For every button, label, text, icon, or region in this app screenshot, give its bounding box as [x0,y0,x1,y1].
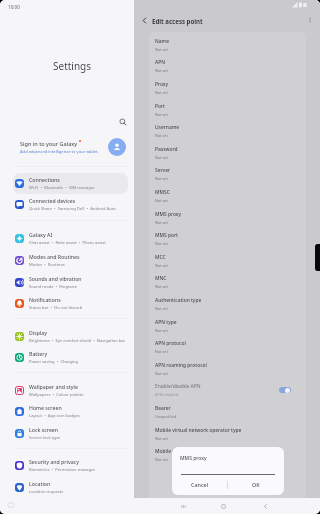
button[interactable]: Battery [13,347,128,368]
staticText: Not set [155,90,168,95]
staticText: Status bar • Do not disturb [29,305,83,311]
button[interactable]: More options [303,13,317,27]
button[interactable]: Enable/disable APN [149,379,306,401]
staticText: APN [155,59,165,66]
staticText: Unspecified [155,414,176,419]
button[interactable]: Search [116,115,130,129]
staticText: Not set [155,349,168,354]
staticText: Cancel [191,481,209,488]
button[interactable]: Username [149,120,306,142]
button[interactable]: Wallpaper and style [13,380,128,401]
staticText: Mobile virtual network operator type [155,427,242,434]
button[interactable]: Authentication type [149,293,306,315]
button[interactable]: Server [149,163,306,185]
staticText: Modes and Routines [29,253,80,260]
button[interactable]: MMS proxy [172,447,284,495]
staticText: Add advanced intelligence to your tablet… [20,149,99,155]
staticText: Not set [155,112,168,117]
staticText: Chat assist • Note assist • Photo assist [29,240,106,246]
staticText: Not set [155,198,168,203]
staticText: Not set [155,263,168,268]
staticText: MMS port [155,232,178,239]
staticText: Notifications [29,296,61,303]
staticText: Home screen [29,404,62,411]
button[interactable]: Location [13,477,128,498]
staticText: Location requests [29,489,64,495]
button[interactable]: Port [149,99,306,121]
staticText: Layout • App icon badges [29,413,80,419]
staticText: Sign in to your Galaxy [20,140,78,147]
button[interactable]: Galaxy AI [13,228,128,249]
button[interactable]: MMSC [149,185,306,207]
button[interactable]: Connections [13,173,128,194]
staticText: Not set [155,155,168,160]
staticText: Not set [155,306,168,311]
staticText: APN type [155,319,177,326]
staticText: Location [29,480,51,487]
staticText: Not set [155,176,168,181]
staticText: Connected devices [29,197,76,204]
button[interactable]: Recents [178,501,189,512]
staticText: Not set [155,371,168,376]
button[interactable]: MMS proxy [149,207,306,229]
staticText: Not set [155,47,168,52]
staticText: Not set [155,284,168,289]
staticText: MMSC [155,189,170,196]
button[interactable]: MNC [149,271,306,293]
staticText: Password [155,146,178,153]
staticText: Galaxy AI [29,231,53,238]
staticText: Not set [155,133,168,138]
button[interactable]: Proxy [149,77,306,99]
button[interactable]: APN protocol [149,336,306,358]
button[interactable]: Home [218,501,229,512]
staticText: Mobile v [155,448,175,455]
button[interactable]: Bearer [149,401,306,423]
staticText: Lock screen [29,426,59,433]
button[interactable]: Display [13,326,128,347]
button[interactable]: Mobile virtual network operator type [149,423,306,445]
staticText: Connections [29,176,60,183]
staticText: Not set [155,241,168,246]
button[interactable]: Lock screen [13,423,128,444]
button[interactable]: Edge panel [315,244,320,271]
staticText: Authentication type [155,297,202,304]
staticText: APN protocol [155,340,186,347]
staticText: Enable/disable APN [155,383,201,390]
button[interactable]: Security and privacy [13,455,128,476]
button[interactable]: Password [149,142,306,164]
button[interactable]: APN [149,55,306,77]
staticText: Username [155,124,180,131]
button[interactable]: APN roaming protocol [149,358,306,380]
staticText: Power saving • Charging [29,359,79,365]
staticText: Bearer [155,405,171,412]
button[interactable]: Modes and Routines [13,250,128,271]
staticText: Edit access point [152,17,203,25]
button[interactable]: APN type [149,315,306,337]
button[interactable]: MCC [149,250,306,272]
button[interactable]: Sounds and vibration [13,272,128,293]
staticText: OK [252,481,260,488]
staticText: Biometrics • Permission manager [29,467,96,473]
button[interactable]: Home screen [13,401,128,422]
staticText: MCC [155,254,166,261]
button[interactable]: MMS port [149,228,306,250]
staticText: Not set [155,68,168,73]
button[interactable]: Cancel [172,474,227,495]
button[interactable]: Name [149,34,306,56]
staticText: Screen lock type [29,435,61,441]
staticText: Not set [155,436,168,441]
staticText: Settings [53,59,92,73]
button[interactable]: Mobile v [149,444,306,466]
staticText: Wallpapers • Colour palette [29,392,84,398]
button[interactable]: Notifications [13,293,128,314]
staticText: Security and privacy [29,458,79,465]
staticText: Brightness • Eye comfort shield • Naviga… [29,338,126,344]
staticText: Not set [155,220,168,225]
button[interactable]: Sign in to your Galaxy [10,135,130,159]
button[interactable]: Back [137,13,151,27]
button[interactable]: Connected devices [13,194,128,215]
button[interactable]: Back [260,501,271,512]
button[interactable]: OK [228,474,284,495]
staticText: MMS proxy [180,455,207,462]
staticText: MMS proxy [155,211,182,218]
